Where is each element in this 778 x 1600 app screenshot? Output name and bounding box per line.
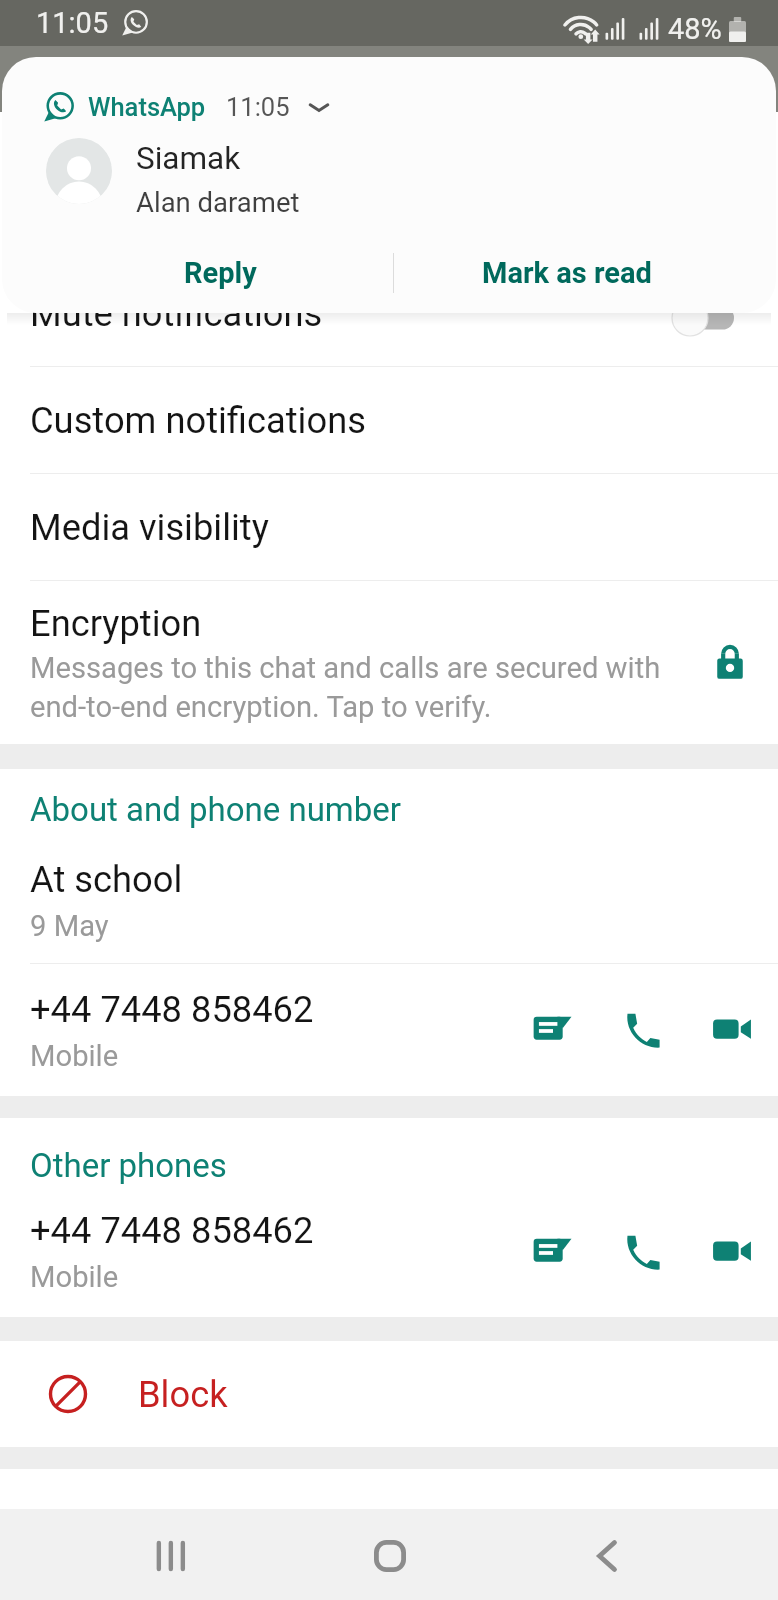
- staticText: Mute notifications: [30, 292, 323, 335]
- staticText: Mobile: [30, 1039, 119, 1073]
- staticText: Siamak: [136, 140, 241, 177]
- staticText: Custom notifications: [30, 399, 366, 442]
- staticText: Media visibility: [30, 506, 269, 549]
- button[interactable]: +44 7448 858462: [0, 964, 778, 1096]
- button[interactable]: Call: [597, 990, 686, 1070]
- staticText: WhatsApp: [88, 92, 206, 122]
- button[interactable]: Message: [508, 990, 597, 1070]
- button[interactable]: Back: [547, 1509, 667, 1600]
- button[interactable]: Block: [0, 1341, 778, 1447]
- staticText: Messages to this chat and calls are secu…: [30, 651, 661, 724]
- staticText: Alan daramet: [136, 186, 300, 218]
- button[interactable]: Reply: [48, 233, 393, 313]
- button[interactable]: Mute notifications: [0, 260, 778, 367]
- button[interactable]: Recents: [111, 1509, 231, 1600]
- staticText: About and phone number: [30, 790, 402, 829]
- staticText: 9 May: [30, 909, 109, 943]
- button[interactable]: Media visibility: [0, 474, 778, 581]
- staticText: +44 7448 858462: [30, 1209, 314, 1252]
- button[interactable]: Encryption: [0, 581, 778, 744]
- button[interactable]: Custom notifications: [0, 367, 778, 474]
- staticText: Encryption: [30, 602, 202, 645]
- staticText: 11:05: [36, 6, 109, 40]
- button[interactable]: Video call: [686, 1212, 778, 1292]
- button[interactable]: Video call: [686, 990, 778, 1070]
- button[interactable]: At school: [0, 837, 778, 963]
- button[interactable]: Message: [508, 1212, 597, 1292]
- staticText: 11:05: [226, 92, 290, 122]
- button[interactable]: +44 7448 858462: [0, 1186, 778, 1317]
- staticText: At school: [30, 858, 183, 901]
- staticText: Block: [138, 1373, 228, 1416]
- button[interactable]: Call: [597, 1212, 686, 1292]
- staticText: Reply: [184, 256, 257, 290]
- button[interactable]: Home: [330, 1509, 450, 1600]
- staticText: 48%: [668, 12, 722, 46]
- staticText: +44 7448 858462: [30, 988, 314, 1031]
- staticText: Mobile: [30, 1260, 119, 1294]
- staticText: Other phones: [30, 1146, 227, 1185]
- staticText: Mark as read: [482, 256, 652, 290]
- button[interactable]: Mark as read: [394, 233, 740, 313]
